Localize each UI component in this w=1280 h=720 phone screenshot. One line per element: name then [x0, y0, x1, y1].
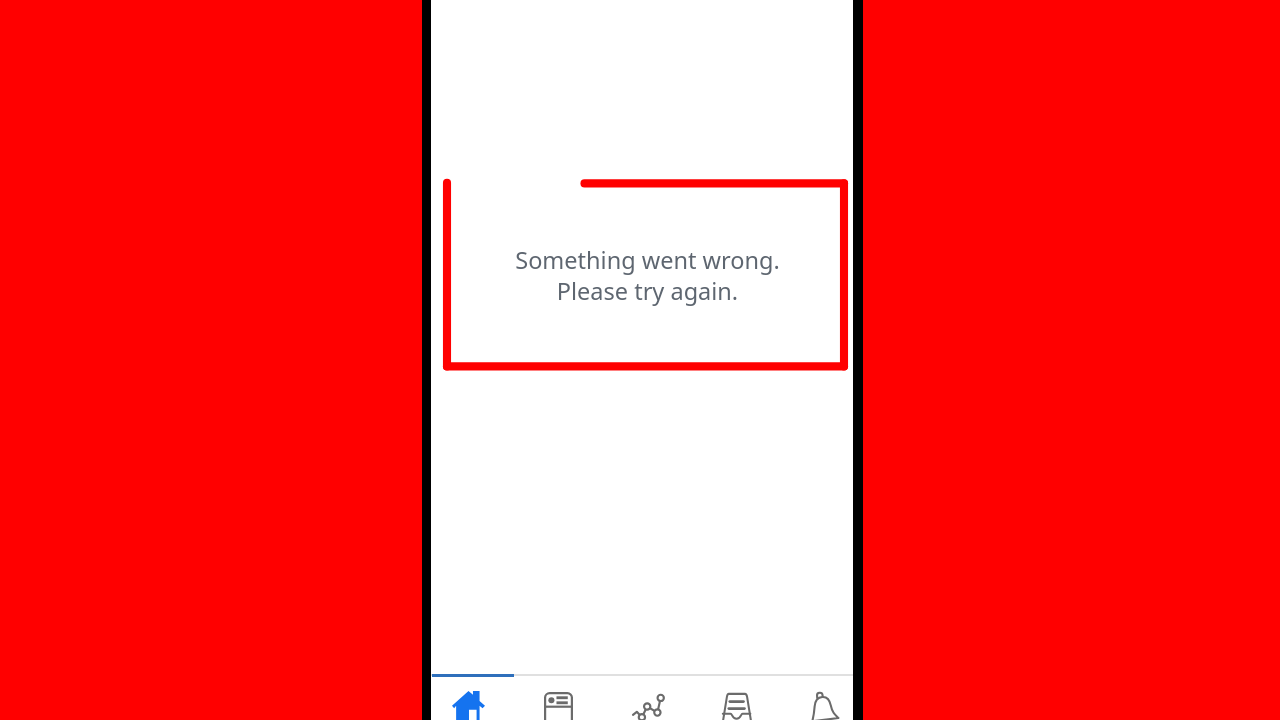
button[interactable]: My Network	[516, 677, 601, 720]
button[interactable]: Home	[431, 677, 516, 720]
button[interactable]: Notifications	[769, 677, 853, 720]
button[interactable]: Post	[601, 677, 685, 720]
button[interactable]: Jobs	[685, 677, 769, 720]
staticText: Something went wrong. Please try again.	[515, 244, 780, 307]
